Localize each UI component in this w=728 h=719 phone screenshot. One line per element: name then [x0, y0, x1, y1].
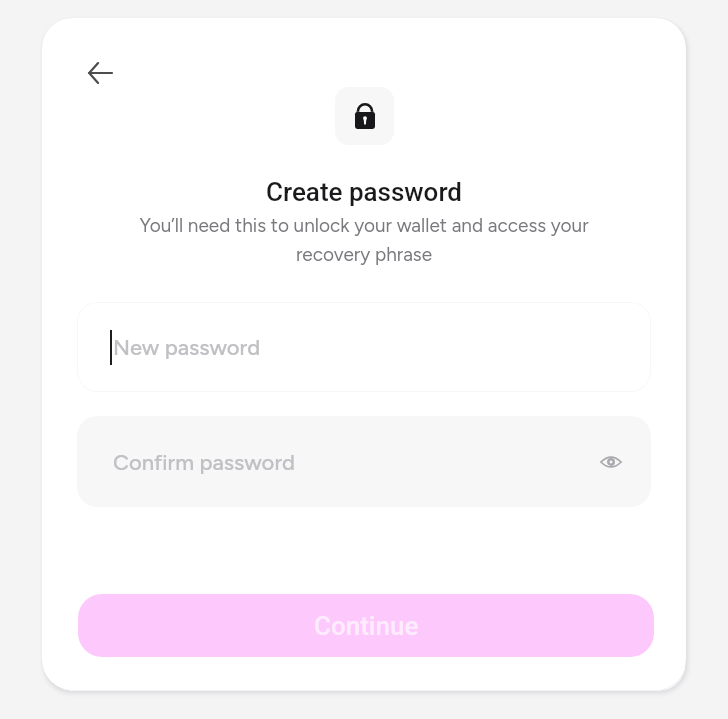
button[interactable]: Show password	[589, 440, 633, 484]
staticText: New password	[113, 334, 261, 360]
button[interactable]: Back	[78, 51, 122, 95]
button[interactable]: Continue	[78, 594, 654, 657]
staticText: You’ll need this to unlock your wallet a…	[128, 214, 600, 266]
staticText: Confirm password	[113, 449, 295, 475]
staticText: Continue	[314, 611, 419, 641]
staticText: Create password	[266, 177, 462, 207]
button[interactable]: Confirm password	[77, 416, 651, 507]
button[interactable]: New password	[77, 302, 651, 392]
